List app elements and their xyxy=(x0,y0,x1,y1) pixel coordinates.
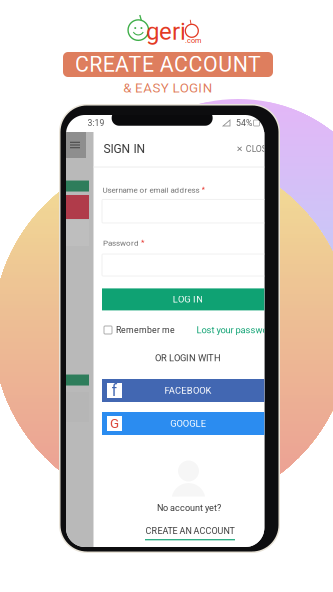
staticText: CLOSE xyxy=(246,144,272,154)
staticText: f xyxy=(111,381,117,400)
button[interactable]: Remember me xyxy=(104,321,175,339)
staticText: ✕ xyxy=(236,144,243,154)
staticText: SIGN IN xyxy=(103,142,145,156)
staticText: * xyxy=(141,237,144,247)
staticText: & EASY LOGIN xyxy=(123,80,213,96)
button[interactable]: f xyxy=(102,379,274,402)
staticText: geri xyxy=(146,17,186,46)
staticText: 54% xyxy=(236,118,252,128)
staticText: Remember me xyxy=(116,325,175,335)
button[interactable]: Lost your password? xyxy=(196,320,279,339)
staticText: OR LOGIN WITH xyxy=(155,352,221,363)
staticText: CREATE AN ACCOUNT xyxy=(145,526,234,536)
staticText: LOG IN xyxy=(173,294,203,305)
staticText: G xyxy=(110,416,119,431)
button[interactable]: ✕ xyxy=(231,139,277,159)
staticText: * xyxy=(201,184,204,194)
staticText: .com xyxy=(185,36,201,45)
staticText: CREATE ACCOUNT xyxy=(75,52,261,77)
staticText: 3:19 xyxy=(87,118,104,128)
staticText: Password xyxy=(103,238,139,248)
button[interactable]: G xyxy=(102,412,274,435)
button[interactable]: LOG IN xyxy=(102,288,274,310)
staticText: No account yet? xyxy=(157,503,221,513)
staticText: FACEBOOK xyxy=(164,385,212,396)
staticText: GOOGLE xyxy=(170,418,206,429)
button[interactable]: CREATE AN ACCOUNT xyxy=(145,526,235,540)
staticText: Username or email address xyxy=(102,185,199,195)
staticText: Lost your password? xyxy=(196,324,279,335)
